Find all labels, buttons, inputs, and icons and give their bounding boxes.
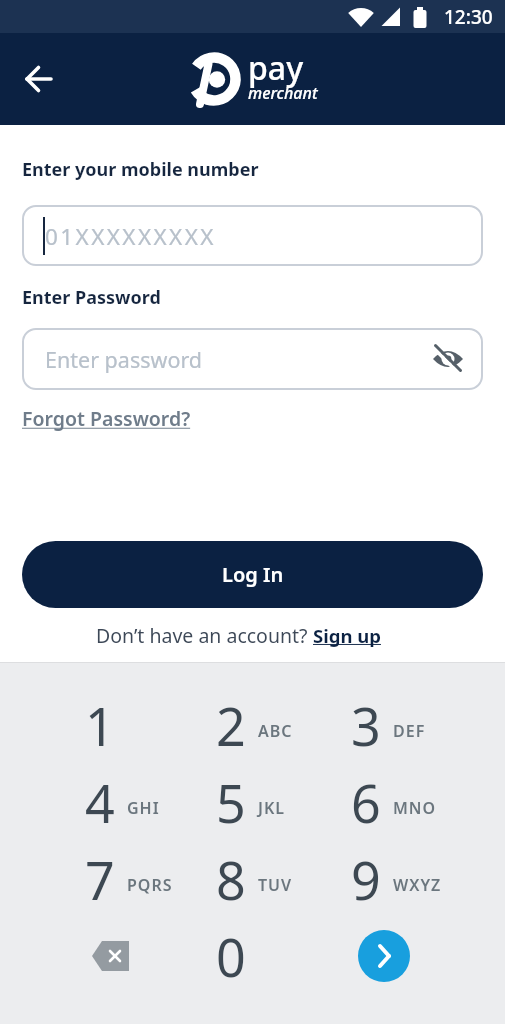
staticText: 5 (216, 767, 246, 838)
button[interactable]: 4 (25, 764, 175, 841)
staticText: Enter your mobile number (22, 157, 259, 182)
button[interactable]: 5 (156, 764, 306, 841)
staticText: 8 (216, 844, 246, 915)
staticText: JKL (258, 797, 286, 819)
button[interactable]: Enter password (22, 328, 483, 390)
staticText: TUV (258, 874, 293, 896)
button[interactable]: 2 (156, 687, 306, 764)
staticText: MNO (393, 797, 437, 819)
staticText: Enter Password (22, 285, 161, 310)
button[interactable]: 6 (291, 764, 441, 841)
button[interactable]: 7 (25, 841, 175, 918)
staticText: 01XXXXXXXXX (45, 221, 216, 252)
button[interactable] (358, 930, 410, 982)
staticText: DEF (393, 720, 426, 742)
staticText: 7 (85, 844, 115, 915)
button[interactable]: 3 (291, 687, 441, 764)
staticText: 3 (351, 690, 381, 761)
staticText: GHI (127, 797, 160, 819)
staticText: PQRS (127, 874, 173, 896)
staticText: WXYZ (393, 874, 442, 896)
button[interactable]: Forgot Password? (22, 405, 191, 432)
staticText: 1 (85, 690, 115, 761)
staticText: Log In (222, 561, 284, 588)
staticText: 2 (216, 690, 246, 761)
staticText: 0 (216, 921, 246, 992)
staticText: Don’t have an account? (96, 622, 313, 649)
staticText: 12:30 (444, 4, 493, 30)
button[interactable]: Sign up (313, 623, 381, 648)
button[interactable] (431, 342, 465, 376)
button[interactable]: 8 (156, 841, 306, 918)
button[interactable]: 0 (156, 918, 306, 995)
staticText: 4 (85, 767, 115, 838)
button[interactable]: Log In (22, 541, 483, 608)
staticText: 6 (351, 767, 381, 838)
staticText: ABC (258, 720, 293, 742)
button[interactable] (87, 935, 137, 977)
staticText: Enter password (45, 345, 203, 374)
button[interactable] (14, 54, 64, 104)
button[interactable]: 01XXXXXXXXX (22, 205, 483, 266)
staticText: merchant (248, 82, 318, 104)
button[interactable]: 1 (25, 687, 175, 764)
staticText: 9 (351, 844, 381, 915)
staticText: pay (248, 46, 304, 90)
button[interactable]: 9 (291, 841, 441, 918)
